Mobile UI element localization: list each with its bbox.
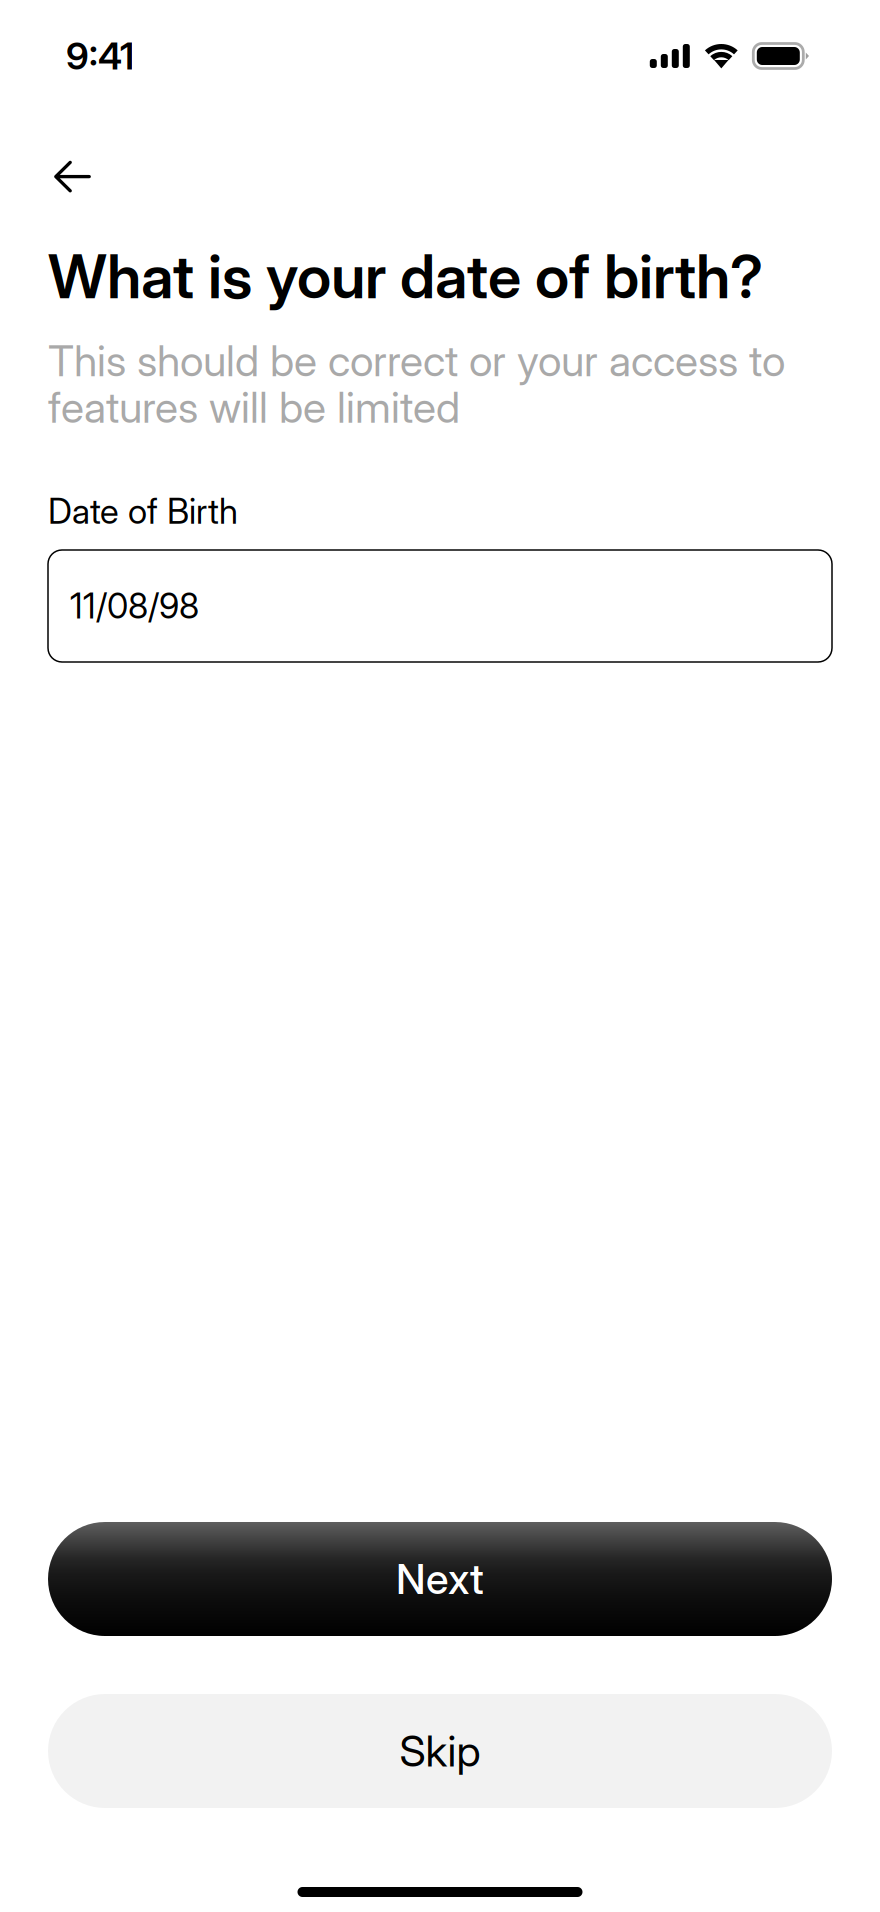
- button[interactable]: Next: [48, 1522, 832, 1636]
- staticText: Date of Birth: [48, 490, 238, 532]
- staticText: Next: [396, 1554, 484, 1604]
- staticText: What is your date of birth?: [48, 240, 763, 313]
- staticText: 11/08/98: [70, 585, 199, 627]
- staticText: Skip: [399, 1725, 480, 1777]
- staticText: This should be correct or your access to…: [48, 335, 785, 433]
- button[interactable]: Back: [40, 145, 105, 204]
- button[interactable]: Skip: [48, 1694, 832, 1808]
- staticText: 9:41: [66, 33, 134, 79]
